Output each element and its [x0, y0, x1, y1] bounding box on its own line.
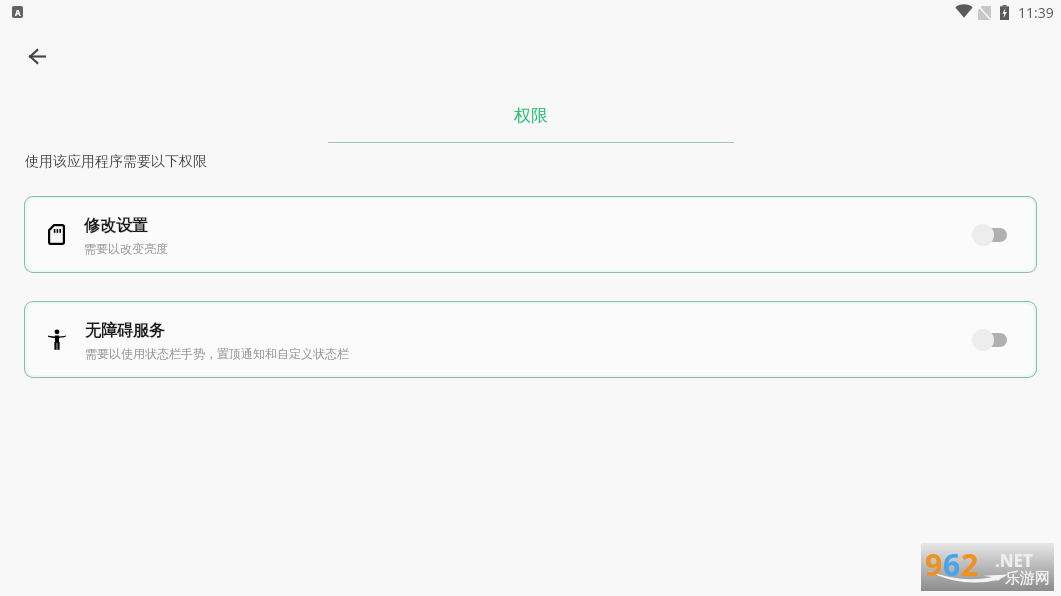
button[interactable]: Toggle [968, 325, 1012, 355]
staticText: 乐游网 [1005, 569, 1050, 588]
button[interactable]: 无障碍服务 [27, 304, 1034, 375]
staticText: 11:39 [1018, 3, 1054, 22]
staticText: 使用该应用程序需要以下权限 [25, 153, 207, 171]
staticText: 6 [943, 544, 961, 585]
staticText: .NET [995, 549, 1033, 572]
button[interactable]: Toggle [968, 220, 1012, 250]
staticText: 需要以使用状态栏手势，置顶通知和自定义状态栏 [85, 346, 349, 361]
button[interactable]: Back [19, 38, 55, 74]
staticText: 修改设置 [84, 216, 148, 236]
staticText: 需要以改变亮度 [84, 241, 168, 256]
staticText: 无障碍服务 [85, 321, 165, 341]
button[interactable]: 权限 [328, 105, 734, 126]
staticText: A [15, 7, 21, 18]
staticText: 权限 [514, 105, 548, 126]
staticText: 2 [961, 544, 979, 585]
button[interactable]: 修改设置 [27, 199, 1034, 270]
staticText: 9 [925, 544, 943, 585]
